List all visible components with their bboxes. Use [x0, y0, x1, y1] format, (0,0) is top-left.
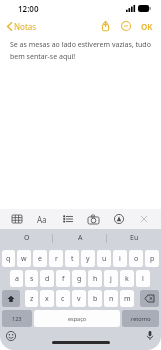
button[interactable]: o: [129, 250, 143, 267]
button[interactable]: z: [25, 290, 38, 307]
button[interactable]: Eu: [107, 229, 161, 247]
button[interactable]: p: [145, 250, 159, 267]
button[interactable]: w: [17, 250, 31, 267]
button[interactable]: v: [72, 290, 86, 307]
staticText: r: [55, 254, 58, 264]
button[interactable]: t: [65, 250, 79, 267]
button[interactable]: b: [88, 290, 102, 307]
button[interactable]: Câmara: [84, 210, 102, 228]
staticText: O: [24, 233, 30, 243]
staticText: Aa: [37, 214, 47, 225]
staticText: 12:00: [18, 3, 39, 14]
staticText: l: [142, 274, 144, 284]
staticText: p: [150, 254, 155, 264]
staticText: s: [30, 274, 34, 284]
button[interactable]: y: [81, 250, 95, 267]
button[interactable]: Maiúsculas: [2, 290, 20, 307]
button[interactable]: O: [0, 229, 53, 247]
button[interactable]: Emoji: [4, 329, 17, 342]
staticText: h: [93, 274, 98, 284]
staticText: q: [6, 254, 11, 264]
button[interactable]: Tabela: [8, 210, 26, 228]
button[interactable]: m: [120, 290, 134, 307]
button[interactable]: n: [104, 290, 118, 307]
button[interactable]: espaço: [34, 310, 120, 327]
staticText: w: [21, 254, 27, 264]
staticText: b: [93, 294, 98, 304]
staticText: u: [102, 254, 107, 264]
staticText: o: [134, 254, 139, 264]
button[interactable]: Ditado: [143, 329, 156, 342]
button[interactable]: r: [49, 250, 63, 267]
staticText: espaço: [68, 315, 87, 322]
button[interactable]: j: [104, 270, 118, 287]
button[interactable]: a: [10, 270, 23, 287]
button[interactable]: x: [40, 290, 54, 307]
button[interactable]: A: [53, 229, 107, 247]
staticText: Eu: [130, 233, 139, 243]
staticText: f: [62, 274, 65, 284]
staticText: z: [30, 294, 34, 304]
staticText: c: [61, 294, 65, 304]
staticText: Notas: [14, 21, 37, 32]
button[interactable]: s: [25, 270, 38, 287]
button[interactable]: Partilhar: [97, 18, 113, 34]
staticText: a: [15, 274, 19, 284]
button[interactable]: Lista: [59, 210, 77, 228]
staticText: g: [77, 274, 82, 284]
button[interactable]: u: [97, 250, 111, 267]
staticText: d: [45, 274, 50, 284]
staticText: Se as mesas ao lado estiverem vazias, tu…: [10, 40, 151, 61]
staticText: t: [71, 254, 74, 264]
staticText: y: [86, 254, 90, 264]
button[interactable]: c: [56, 290, 70, 307]
button[interactable]: g: [72, 270, 86, 287]
staticText: e: [38, 254, 42, 264]
button[interactable]: Mais: [118, 18, 134, 34]
button[interactable]: h: [88, 270, 102, 287]
button[interactable]: d: [40, 270, 54, 287]
staticText: i: [119, 254, 121, 264]
button[interactable]: f: [56, 270, 70, 287]
staticText: m: [124, 294, 131, 304]
button[interactable]: Apagar: [140, 290, 159, 307]
button[interactable]: i: [113, 250, 127, 267]
staticText: OK: [141, 21, 153, 32]
staticText: 123: [12, 315, 22, 322]
button[interactable]: Notas: [5, 19, 39, 34]
button[interactable]: Fechar: [135, 210, 153, 228]
button[interactable]: q: [2, 250, 15, 267]
button[interactable]: l: [136, 270, 150, 287]
button[interactable]: 123: [2, 310, 32, 327]
staticText: j: [110, 274, 112, 284]
staticText: retorno: [131, 315, 151, 322]
staticText: n: [109, 294, 114, 304]
staticText: v: [77, 294, 81, 304]
button[interactable]: OK: [139, 19, 155, 34]
button[interactable]: retorno: [122, 310, 159, 327]
button[interactable]: Formatar texto: [33, 210, 51, 228]
staticText: x: [45, 294, 49, 304]
staticText: k: [125, 274, 129, 284]
button[interactable]: e: [33, 250, 47, 267]
button[interactable]: k: [120, 270, 134, 287]
button[interactable]: Marcação: [110, 210, 128, 228]
staticText: A: [78, 233, 83, 243]
